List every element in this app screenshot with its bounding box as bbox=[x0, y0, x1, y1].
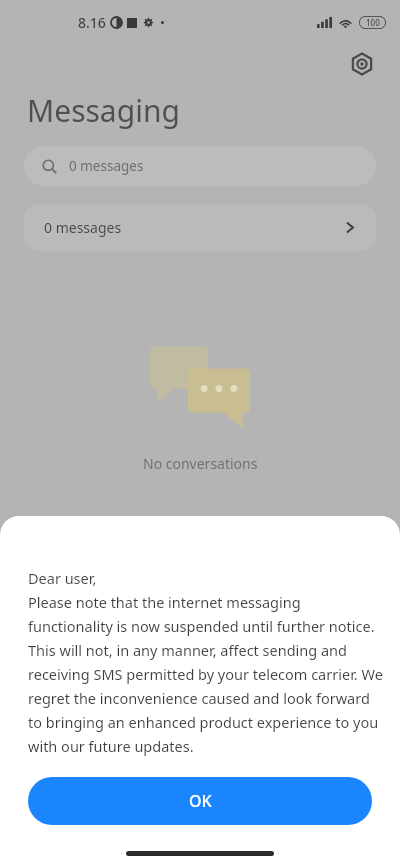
staticText: 8.16 bbox=[78, 13, 106, 32]
staticText: 100 bbox=[366, 17, 380, 28]
button[interactable]: 0 messages bbox=[24, 146, 376, 186]
button[interactable]: Settings bbox=[346, 48, 378, 80]
staticText: 0 messages bbox=[44, 218, 122, 237]
staticText: 0 messages bbox=[69, 157, 144, 175]
staticText: Dear user, Please note that the internet… bbox=[28, 568, 383, 756]
button[interactable]: OK bbox=[28, 777, 372, 825]
staticText: No conversations bbox=[143, 454, 258, 473]
staticText: OK bbox=[189, 790, 212, 812]
button[interactable]: 0 messages bbox=[24, 204, 376, 251]
staticText: Messaging bbox=[27, 90, 180, 131]
